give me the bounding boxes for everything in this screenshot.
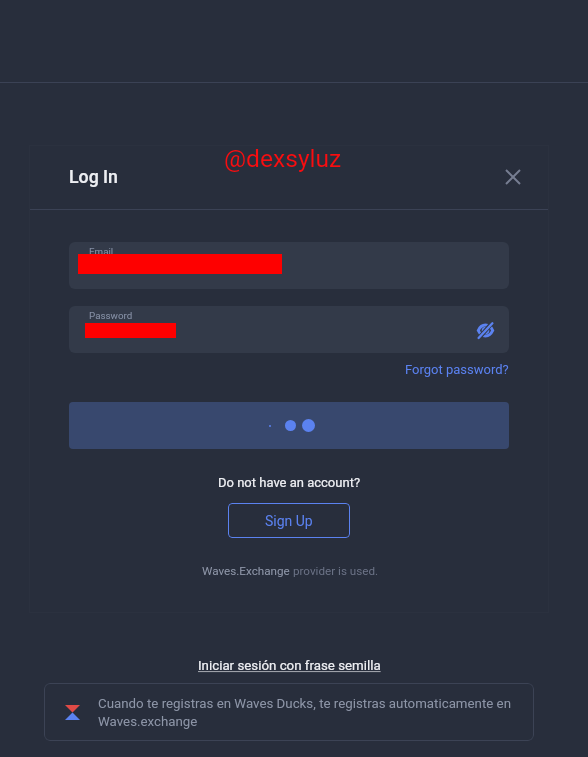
button[interactable]: Cuando te registras en Waves Ducks, te r… bbox=[44, 683, 534, 741]
button[interactable]: Forgot password? bbox=[404, 360, 510, 379]
staticText: provider is used. bbox=[290, 564, 379, 578]
button[interactable]: Signing in bbox=[69, 402, 509, 449]
staticText: Email bbox=[89, 246, 114, 257]
staticText: Iniciar sesión con frase semilla bbox=[198, 658, 381, 674]
staticText: Password bbox=[89, 310, 133, 321]
staticText: Sign Up bbox=[265, 513, 313, 529]
button[interactable]: Password bbox=[69, 306, 509, 353]
staticText: Cuando te registras en Waves Ducks, te r… bbox=[98, 696, 512, 729]
staticText: @dexsyluz bbox=[224, 144, 342, 173]
staticText: Forgot password? bbox=[405, 362, 509, 377]
button[interactable]: Iniciar sesión con frase semilla bbox=[198, 658, 381, 674]
staticText: Do not have an account? bbox=[218, 475, 361, 490]
staticText: Log In bbox=[69, 167, 118, 188]
button[interactable]: Close bbox=[495, 159, 531, 195]
button[interactable]: Email bbox=[69, 242, 509, 289]
staticText: Waves.Exchange bbox=[202, 564, 290, 578]
button[interactable]: Show password bbox=[469, 314, 501, 346]
button[interactable]: Sign Up bbox=[228, 503, 350, 538]
